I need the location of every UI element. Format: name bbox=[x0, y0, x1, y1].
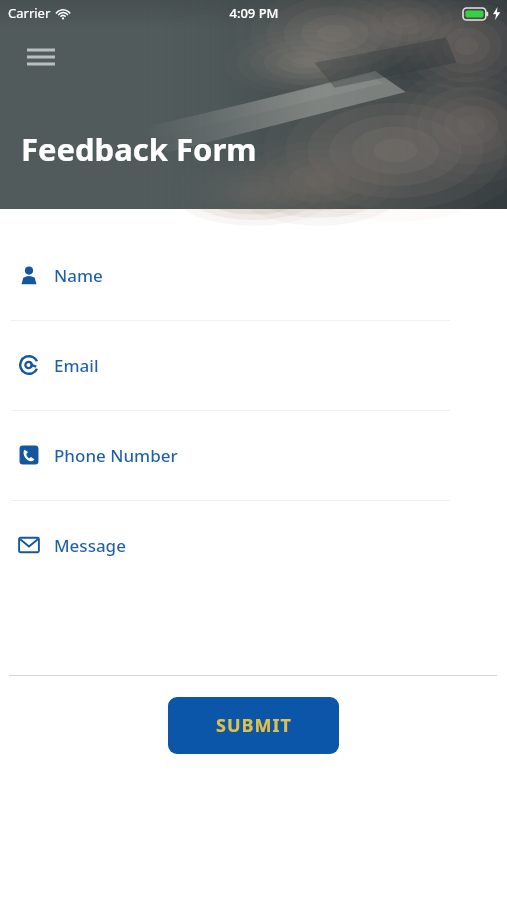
staticText: Feedback Form bbox=[21, 128, 257, 170]
staticText: Email bbox=[54, 354, 99, 377]
staticText: SUBMIT bbox=[216, 713, 292, 738]
button[interactable]: Email bbox=[0, 348, 507, 382]
button[interactable]: SUBMIT bbox=[168, 697, 339, 754]
staticText: Carrier bbox=[8, 4, 51, 22]
staticText: Name bbox=[54, 264, 103, 287]
button[interactable]: Phone Number bbox=[0, 438, 507, 472]
staticText: 4:09 PM bbox=[229, 4, 279, 22]
button[interactable]: Message bbox=[0, 528, 507, 562]
button[interactable]: Open navigation menu bbox=[20, 38, 62, 76]
button[interactable]: Name bbox=[0, 258, 507, 292]
staticText: Message bbox=[54, 534, 126, 557]
staticText: Phone Number bbox=[54, 444, 178, 467]
